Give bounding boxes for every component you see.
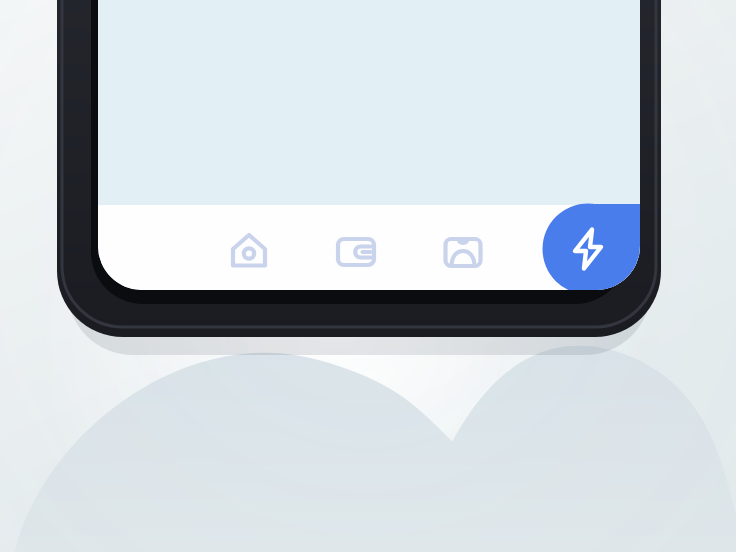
button[interactable]: Gallery: [427, 215, 499, 287]
button[interactable]: Quick action: [543, 205, 640, 290]
button[interactable]: Home: [213, 215, 285, 287]
button[interactable]: Wallet: [320, 215, 392, 287]
button[interactable]: Shop: [534, 215, 606, 287]
